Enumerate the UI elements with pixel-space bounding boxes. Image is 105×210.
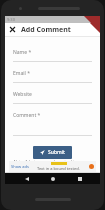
button[interactable]: Close [8,25,17,34]
button[interactable]: Advertisement [9,161,96,172]
staticText: Note: Admin approval required to appear [13,159,92,161]
staticText: Website [13,91,32,98]
button[interactable]: Recent apps [74,173,85,184]
staticText: Comment * [13,112,41,119]
button[interactable]: Website [13,91,92,104]
staticText: Submit [48,149,65,156]
button[interactable]: Comment * [13,112,92,136]
staticText: 9:30 [7,17,15,22]
staticText: Email * [13,70,30,77]
staticText: Name * [13,49,32,56]
button[interactable]: Back [21,173,32,184]
staticText: Add Comment [21,25,71,35]
button[interactable]: Email * [13,70,92,83]
button[interactable]: Submit [33,146,72,159]
staticText: Show ads [11,164,29,169]
staticText: Text in a bound tested. [37,166,80,171]
button[interactable]: Name * [13,49,92,62]
button[interactable]: Home [47,173,58,184]
